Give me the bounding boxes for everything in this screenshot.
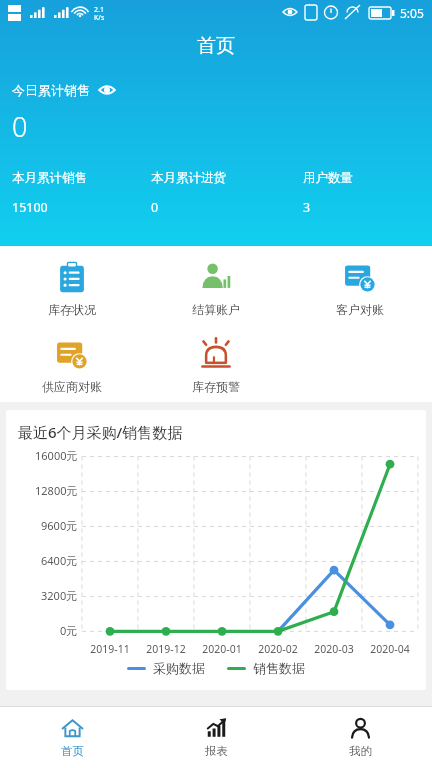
staticText: 结算账户 — [192, 302, 240, 317]
button[interactable]: 结算账户 — [144, 254, 288, 323]
staticText: 3 — [303, 199, 311, 216]
staticText: 16000元 — [35, 448, 78, 463]
staticText: 2019-12 — [138, 642, 194, 656]
staticText: 9600元 — [41, 518, 78, 533]
staticText: 2020-02 — [250, 642, 306, 656]
button[interactable]: 库存状况 — [0, 254, 144, 323]
staticText: 3200元 — [41, 588, 78, 603]
staticText: 销售数据 — [253, 660, 305, 676]
staticText: 2020-03 — [306, 642, 362, 656]
staticText: 2019-11 — [82, 642, 138, 656]
staticText: 最近6个月采购/销售数据 — [18, 422, 183, 442]
staticText: 采购数据 — [153, 660, 205, 676]
staticText: 0 — [12, 108, 28, 145]
staticText: 首页 — [197, 34, 235, 58]
button[interactable]: 我的 — [288, 707, 432, 768]
button[interactable]: 库存预警 — [144, 331, 288, 400]
staticText: 供应商对账 — [42, 379, 102, 394]
staticText: 5:05 — [400, 5, 424, 21]
button[interactable]: 首页 — [0, 707, 144, 768]
staticText: 15100 — [12, 199, 48, 216]
button[interactable]: 显示或隐藏金额 — [97, 80, 117, 100]
staticText: 库存预警 — [192, 379, 240, 394]
button[interactable]: 客户对账 — [288, 254, 432, 323]
staticText: 2.1 K/s — [94, 5, 105, 22]
button[interactable]: 报表 — [144, 707, 288, 768]
staticText: 本月累计销售 — [12, 170, 87, 186]
staticText: 报表 — [205, 744, 228, 758]
staticText: 用户数量 — [303, 170, 353, 186]
staticText: 2020-04 — [362, 642, 418, 656]
staticText: 首页 — [61, 744, 84, 758]
button[interactable]: 供应商对账 — [0, 331, 144, 400]
staticText: 2020-01 — [194, 642, 250, 656]
staticText: 0 — [151, 199, 159, 216]
staticText: 本月累计进货 — [151, 170, 226, 186]
staticText: 今日累计销售 — [12, 82, 90, 98]
staticText: 我的 — [349, 744, 372, 758]
staticText: 库存状况 — [48, 302, 96, 317]
staticText: 客户对账 — [336, 302, 384, 317]
staticText: 0元 — [60, 623, 78, 638]
staticText: 12800元 — [35, 483, 78, 498]
staticText: 6400元 — [41, 553, 78, 568]
